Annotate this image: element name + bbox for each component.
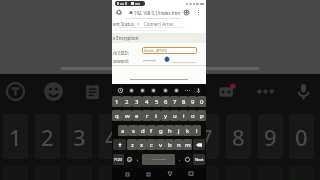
button[interactable]: 2 [122, 96, 132, 107]
staticText: 9 [264, 122, 277, 152]
staticText: d [141, 127, 145, 135]
button[interactable]: z [127, 139, 137, 150]
staticText: 8 [232, 122, 245, 152]
button[interactable]: 1 [112, 96, 122, 107]
staticText: y [164, 112, 168, 120]
staticText: Next [195, 157, 204, 162]
staticText: 8 [182, 98, 186, 106]
button[interactable]: Keyboard tool [194, 86, 202, 94]
button[interactable]: Page actions [182, 8, 190, 16]
staticText: q [115, 112, 119, 120]
staticText: h [168, 127, 172, 135]
button[interactable]: b [165, 139, 174, 150]
staticText: ent Status [113, 21, 134, 26]
staticText: u [173, 112, 177, 120]
staticText: 0 [200, 98, 204, 106]
button[interactable]: l [192, 125, 201, 136]
button[interactable]: x [137, 139, 147, 150]
button[interactable]: 8 [179, 96, 188, 107]
button[interactable]: 9 [188, 96, 197, 107]
button[interactable]: Keyboard tool [172, 86, 180, 94]
staticText: e [135, 112, 139, 120]
button[interactable]: m [183, 139, 192, 150]
button[interactable]: k [183, 125, 192, 136]
button[interactable]: . [177, 154, 182, 165]
button[interactable]: v [156, 139, 165, 150]
button[interactable]: w [122, 110, 132, 121]
staticText: rk SSID: [113, 50, 129, 56]
staticText: ssword: [113, 58, 129, 64]
button[interactable]: a [118, 125, 128, 136]
staticText: 3 [135, 98, 139, 106]
button[interactable]: p [197, 110, 206, 121]
staticText: 1 [9, 122, 22, 152]
staticText: 4 [145, 98, 149, 106]
staticText: m [185, 141, 191, 149]
staticText: r [146, 112, 149, 120]
button[interactable]: Navigation item [121, 168, 133, 180]
button[interactable]: j [174, 125, 183, 136]
button[interactable]: u [170, 110, 179, 121]
button[interactable]: d [138, 125, 147, 136]
button[interactable]: ?123 [113, 154, 124, 165]
staticText: 192.168.0.1/index.htm [134, 10, 181, 16]
staticText: 5 [136, 122, 149, 152]
staticText: , [137, 156, 139, 163]
button[interactable]: Keyboard tool [183, 86, 191, 94]
button[interactable]: Space [142, 154, 175, 165]
staticText: . [179, 156, 181, 163]
button[interactable]: e [132, 110, 142, 121]
button[interactable]: y [161, 110, 170, 121]
button[interactable]: Shift [113, 139, 126, 150]
button[interactable]: 6 [161, 96, 170, 107]
staticText: i [183, 112, 185, 120]
button[interactable]: 0 [197, 96, 206, 107]
button[interactable]: Sonic_4F5F3 [142, 47, 197, 54]
staticText: o [191, 112, 195, 120]
button[interactable]: 3 [132, 96, 142, 107]
staticText: 2 [41, 122, 54, 152]
staticText: k [186, 127, 190, 135]
button[interactable]: Voice input [184, 154, 191, 165]
staticText: l [196, 127, 198, 135]
button[interactable]: Keyboard tool [149, 86, 157, 94]
button[interactable]: g [156, 125, 165, 136]
staticText: f [150, 127, 153, 135]
button[interactable]: r [142, 110, 152, 121]
staticText: z [131, 141, 134, 149]
staticText: s Encryption [113, 35, 139, 41]
button[interactable]: , [135, 154, 140, 165]
button[interactable]: More options [194, 8, 202, 16]
staticText: w [125, 112, 130, 120]
button[interactable]: 4 [142, 96, 152, 107]
button[interactable]: o [188, 110, 197, 121]
button[interactable]: n [174, 139, 183, 150]
button[interactable]: 7 [170, 96, 179, 107]
button[interactable]: q [112, 110, 122, 121]
button[interactable]: 5 [152, 96, 161, 107]
staticText: 5 [155, 98, 159, 106]
staticText: Sonic_4F5F3 [144, 48, 167, 53]
button[interactable]: i [179, 110, 188, 121]
button[interactable]: Keyboard tool [127, 86, 135, 94]
button[interactable]: Next [193, 154, 205, 165]
button[interactable]: c [147, 139, 156, 150]
button[interactable]: Keyboard tool [161, 86, 169, 94]
button[interactable]: Navigation item [142, 168, 154, 180]
button[interactable]: Navigation item [164, 168, 176, 180]
staticText: ?123 [114, 157, 123, 162]
button[interactable]: Navigation item [185, 168, 197, 180]
button[interactable]: f [147, 125, 156, 136]
staticText: x [140, 141, 144, 149]
button[interactable]: Keyboard tool [138, 86, 146, 94]
staticText: b [168, 141, 172, 149]
staticText: n [177, 141, 181, 149]
staticText: v [159, 141, 163, 149]
button[interactable]: t [152, 110, 161, 121]
button[interactable]: Backspace [193, 139, 205, 150]
button[interactable]: Home [115, 8, 123, 16]
button[interactable]: Keyboard tool [116, 86, 124, 94]
button[interactable]: Emoji [126, 154, 133, 165]
button[interactable]: s [128, 125, 138, 136]
button[interactable]: h [165, 125, 174, 136]
